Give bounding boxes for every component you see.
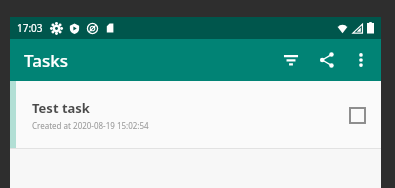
staticText: 17:03: [17, 21, 43, 35]
button[interactable]: More options: [345, 44, 377, 76]
staticText: Test task: [32, 99, 90, 117]
button[interactable]: Filter: [273, 42, 309, 78]
staticText: Tasks: [24, 49, 68, 72]
button[interactable]: Test task: [10, 81, 381, 149]
staticText: Created at 2020-08-19 15:02:54: [32, 120, 149, 131]
button[interactable]: Share: [309, 42, 345, 78]
button[interactable]: Mark task complete: [337, 95, 377, 135]
